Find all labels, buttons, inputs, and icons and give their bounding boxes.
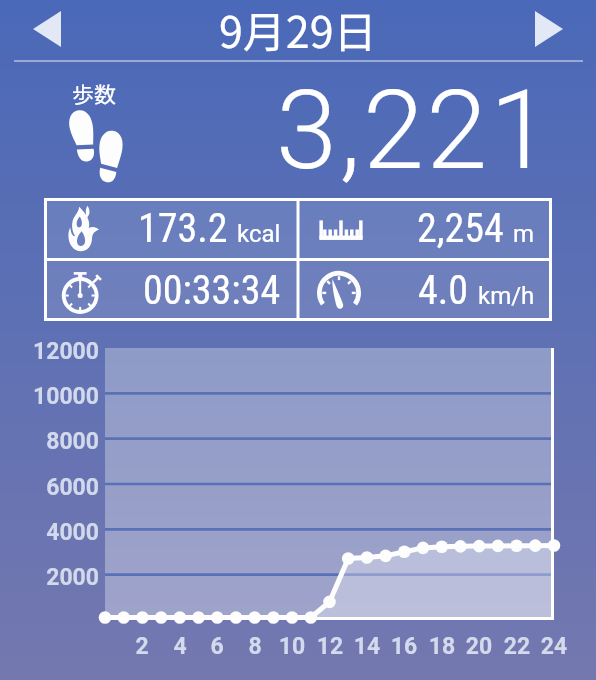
staticText: 12 [310,633,350,660]
staticText: 24 [534,633,574,660]
staticText: 2 [122,633,162,660]
button[interactable]: 4.0 [298,259,552,321]
staticText: 2,254 [417,205,504,252]
staticText: 4 [160,633,200,660]
staticText: 16 [384,633,424,660]
staticText: 10000 [0,383,99,410]
staticText: 8000 [0,428,99,455]
staticText: 173.2 [138,205,228,252]
button[interactable]: Previous day [14,0,80,62]
staticText: 3,221 [276,66,554,195]
staticText: kcal [237,220,281,248]
staticText: 20 [459,633,499,660]
staticText: 6 [197,633,237,660]
button[interactable]: Next day [516,0,582,62]
staticText: 6000 [0,474,99,501]
staticText: m [513,220,535,248]
staticText: 12000 [0,338,99,365]
staticText: 00:33:34 [143,267,281,314]
staticText: 4000 [0,519,99,546]
staticText: km/h [478,282,535,310]
staticText: 歩数 [72,77,117,109]
button[interactable]: 173.2 [44,198,298,259]
staticText: 22 [497,633,537,660]
staticText: 4.0 [418,267,469,314]
staticText: 18 [422,633,462,660]
button[interactable]: 2,254 [298,198,552,259]
staticText: 14 [347,633,387,660]
button[interactable]: 00:33:34 [44,259,298,321]
staticText: 10 [272,633,312,660]
staticText: 8 [235,633,275,660]
staticText: 2000 [0,564,99,591]
staticText: 9月29日 [219,0,377,60]
